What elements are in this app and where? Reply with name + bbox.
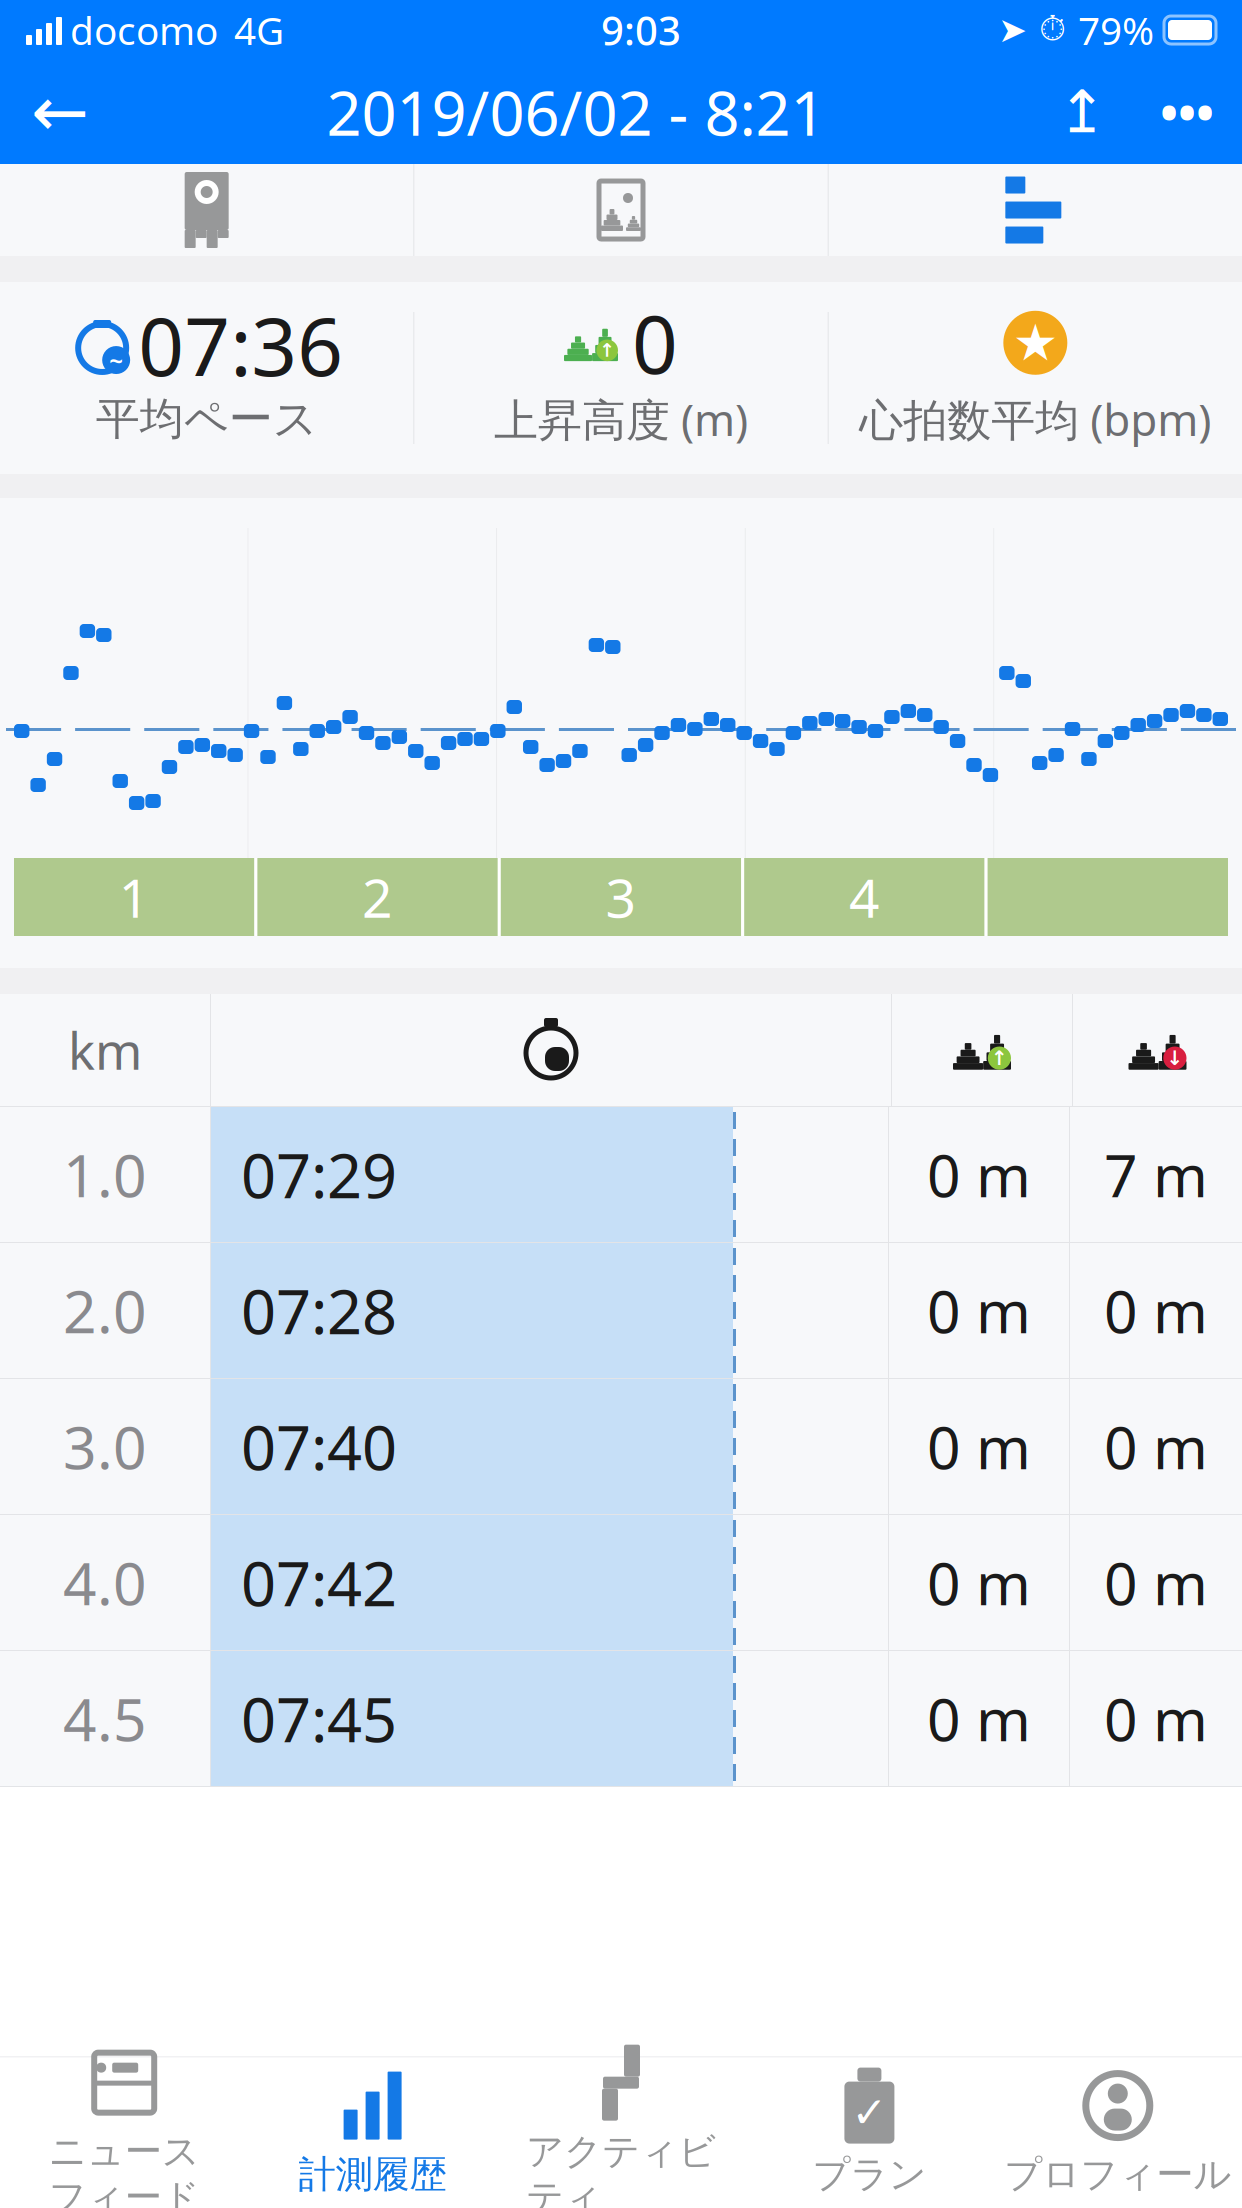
button[interactable]: More options bbox=[1132, 60, 1242, 164]
staticText: プロフィール bbox=[1004, 2152, 1231, 2197]
button[interactable]: 1.0 bbox=[0, 1107, 1242, 1243]
staticText: 2.0 bbox=[63, 1271, 147, 1349]
staticText: ~ bbox=[109, 344, 123, 376]
staticText: 4.0 bbox=[63, 1543, 147, 1621]
button[interactable]: アクティビティ bbox=[497, 2057, 745, 2207]
staticText: 0 m bbox=[927, 1679, 1031, 1757]
staticText: ↥ bbox=[1057, 79, 1106, 145]
staticText: ★ bbox=[1013, 314, 1058, 371]
staticText: ⏱ bbox=[1039, 13, 1066, 47]
staticText: 07:40 bbox=[241, 1406, 397, 1487]
staticText: 0 m bbox=[1104, 1543, 1208, 1621]
button[interactable]: 計測履歴 bbox=[248, 2057, 497, 2207]
staticText: ニュースフィード bbox=[49, 2129, 200, 2208]
staticText: 上昇高度 (m) bbox=[494, 390, 748, 448]
staticText: ↓ bbox=[1166, 1047, 1183, 1069]
staticText: 07:42 bbox=[241, 1542, 397, 1623]
button[interactable]: ✓ bbox=[745, 2057, 994, 2207]
staticText: 4.5 bbox=[63, 1679, 147, 1757]
staticText: 0 m bbox=[927, 1543, 1031, 1621]
staticText: 79% bbox=[1078, 4, 1154, 56]
staticText: docomo bbox=[70, 4, 218, 56]
staticText: 0 m bbox=[927, 1135, 1031, 1213]
staticText: 0 m bbox=[1104, 1271, 1208, 1349]
staticText: 平均ペース bbox=[96, 392, 318, 446]
staticText: 2 bbox=[362, 862, 393, 932]
staticText: 07:45 bbox=[241, 1678, 397, 1759]
button[interactable]: Photos bbox=[414, 164, 828, 256]
staticText: 計測履歴 bbox=[299, 2152, 447, 2197]
staticText: 7 m bbox=[1104, 1135, 1208, 1213]
button[interactable]: Splits bbox=[829, 164, 1242, 256]
staticText: 07:36 bbox=[138, 292, 343, 398]
staticText: 3 bbox=[605, 862, 636, 932]
staticText: 4 bbox=[849, 862, 880, 932]
staticText: 4G bbox=[234, 4, 284, 56]
staticText: 0 bbox=[632, 290, 678, 396]
staticText: 3.0 bbox=[63, 1407, 147, 1485]
staticText: プラン bbox=[812, 2152, 926, 2197]
button[interactable]: プロフィール bbox=[994, 2057, 1242, 2207]
staticText: 0 m bbox=[1104, 1407, 1208, 1485]
staticText: ↑ bbox=[599, 340, 615, 361]
button[interactable]: 3.0 bbox=[0, 1379, 1242, 1515]
staticText: 0 m bbox=[927, 1271, 1031, 1349]
staticText: 9:03 bbox=[601, 3, 681, 56]
staticText: 1.0 bbox=[63, 1135, 147, 1213]
button[interactable]: 2.0 bbox=[0, 1243, 1242, 1379]
staticText: ✓ bbox=[851, 2088, 887, 2137]
staticText: アクティビティ bbox=[526, 2129, 716, 2208]
button[interactable]: ニュースフィード bbox=[0, 2057, 248, 2207]
staticText: ← bbox=[31, 73, 89, 151]
button[interactable]: Back bbox=[0, 60, 120, 164]
staticText: ➤ bbox=[998, 10, 1027, 50]
staticText: 心拍数平均 (bpm) bbox=[859, 390, 1211, 448]
staticText: ↑ bbox=[991, 1047, 1008, 1069]
staticText: ••• bbox=[1160, 80, 1214, 144]
staticText: 0 m bbox=[1104, 1679, 1208, 1757]
staticText: 0 m bbox=[927, 1407, 1031, 1485]
staticText: 07:29 bbox=[241, 1134, 397, 1215]
button[interactable]: Map bbox=[0, 164, 413, 256]
button[interactable]: 4.0 bbox=[0, 1515, 1242, 1651]
button[interactable]: 4.5 bbox=[0, 1651, 1242, 1787]
staticText: 07:28 bbox=[241, 1270, 397, 1351]
staticText: 2019/06/02 - 8:21 bbox=[326, 71, 825, 153]
staticText: km bbox=[68, 1016, 142, 1084]
staticText: 1 bbox=[119, 862, 150, 932]
button[interactable]: Share bbox=[1032, 60, 1132, 164]
